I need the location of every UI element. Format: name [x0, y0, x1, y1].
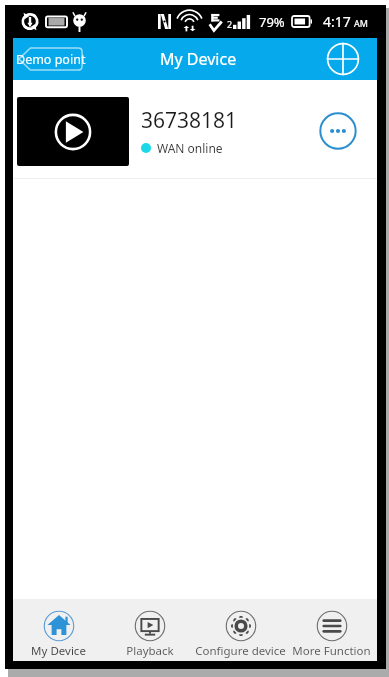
button[interactable]: More Function	[286, 599, 377, 661]
staticText: 2	[227, 18, 233, 30]
button[interactable]: Configure device	[195, 599, 286, 661]
button[interactable]: Demo point	[18, 47, 83, 71]
staticText: Playback	[126, 643, 174, 659]
button[interactable]: My Device	[13, 599, 104, 661]
staticText: AM	[354, 17, 368, 29]
staticText: WAN online	[157, 140, 223, 156]
staticText: My Device	[31, 643, 86, 659]
staticText: 79%	[259, 13, 285, 31]
button[interactable]: Playback	[104, 599, 195, 661]
staticText: More Function	[292, 643, 371, 659]
staticText: My Device	[160, 48, 237, 70]
staticText: Demo point	[16, 51, 86, 68]
staticText: 4:17	[323, 12, 351, 31]
button[interactable]: Add device	[324, 40, 362, 78]
staticText: Configure device	[195, 643, 286, 659]
button[interactable]: 36738181	[13, 80, 377, 179]
button[interactable]: More options	[319, 112, 357, 150]
staticText: 36738181	[141, 106, 238, 135]
